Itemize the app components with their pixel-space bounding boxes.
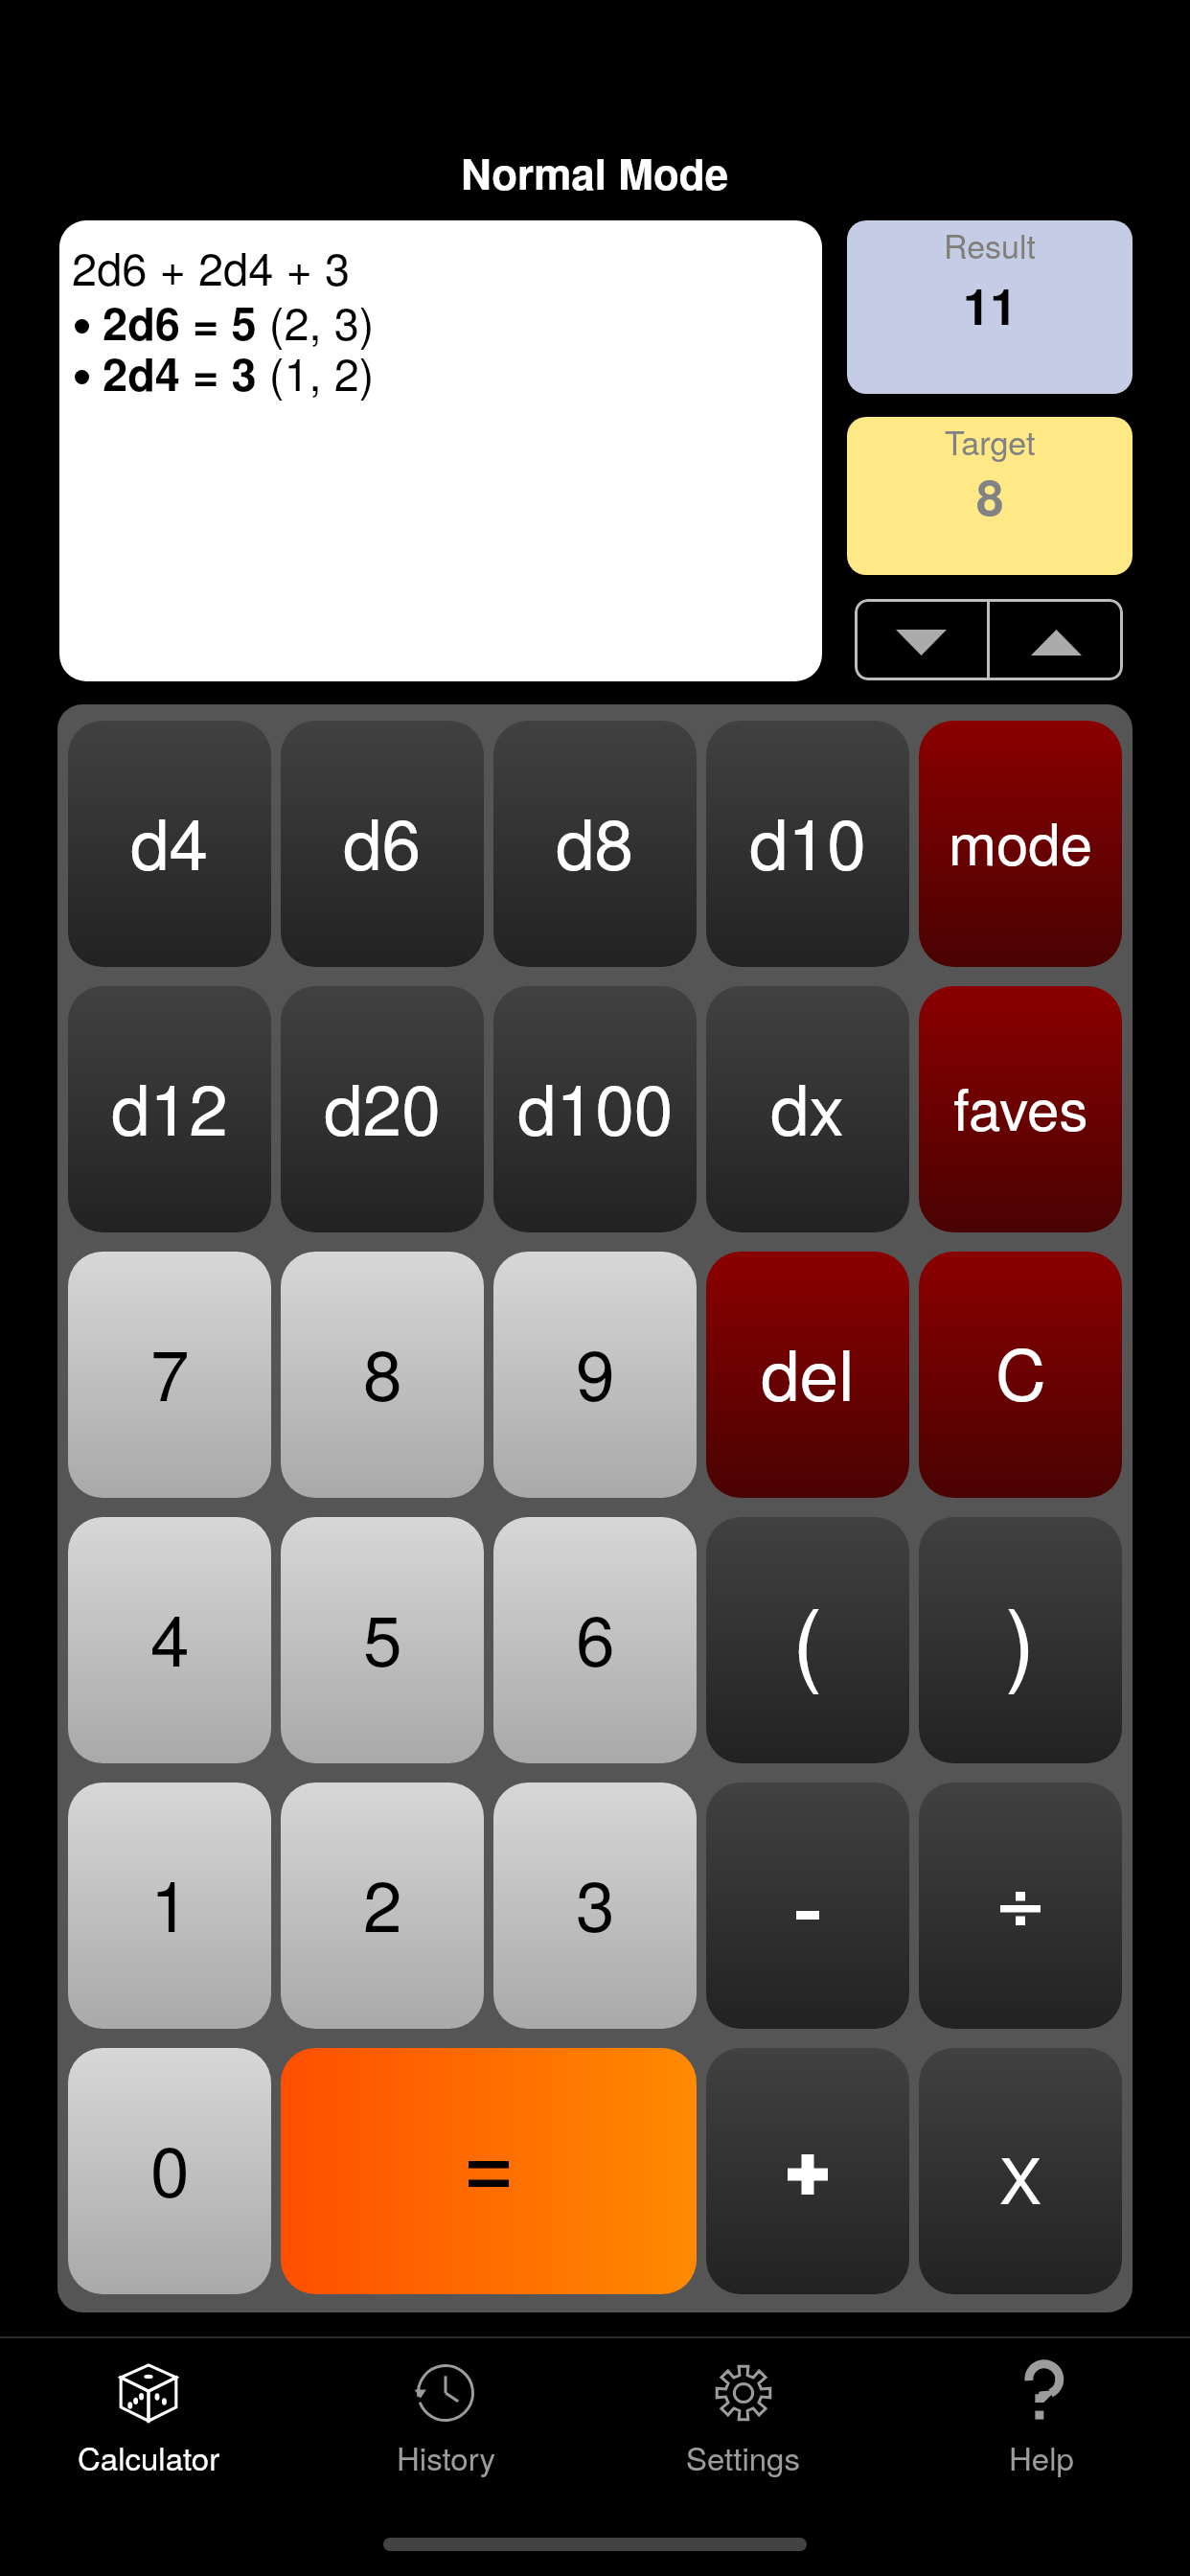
staticText: Result xyxy=(944,221,1037,268)
button[interactable]: History xyxy=(297,2338,594,2492)
staticText: 8 xyxy=(363,1321,402,1421)
button[interactable]: d4 xyxy=(68,721,271,967)
button[interactable]: 9 xyxy=(493,1252,697,1498)
staticText: ( xyxy=(792,1572,823,1701)
button[interactable]: faves xyxy=(919,986,1122,1232)
button[interactable]: d6 xyxy=(281,721,484,967)
button[interactable]: del xyxy=(706,1252,909,1498)
button[interactable] xyxy=(281,2048,697,2294)
staticText: History xyxy=(397,2434,495,2479)
button[interactable]: X xyxy=(919,2048,1122,2294)
staticText: 2d6 = 5 (2, 3) xyxy=(103,288,375,354)
button[interactable]: 1 xyxy=(68,1782,271,2029)
staticText: 6 xyxy=(576,1586,615,1687)
staticText: d20 xyxy=(324,1055,441,1156)
staticText: d10 xyxy=(749,790,866,890)
staticText: d12 xyxy=(111,1055,228,1156)
staticText: Settings xyxy=(686,2434,800,2479)
staticText: d8 xyxy=(556,790,634,890)
staticText: faves xyxy=(953,1065,1088,1147)
button[interactable]: Result xyxy=(847,220,1133,394)
button[interactable]: d12 xyxy=(68,986,271,1232)
button[interactable]: 3 xyxy=(493,1782,697,2029)
staticText: C xyxy=(995,1321,1046,1421)
staticText: Normal Mode xyxy=(461,142,729,202)
staticText: 3 xyxy=(576,1851,615,1952)
staticText: 2d4 = 3 (1, 2) xyxy=(103,339,375,404)
staticText: 9 xyxy=(576,1321,615,1421)
staticText: 7 xyxy=(150,1321,190,1421)
staticText: 4 xyxy=(150,1586,190,1687)
button[interactable]: Calculator xyxy=(0,2338,297,2492)
staticText: Help xyxy=(1009,2434,1074,2479)
button[interactable]: Decrease target xyxy=(855,599,987,680)
staticText: d6 xyxy=(343,790,422,890)
button[interactable]: dx xyxy=(706,986,909,1232)
button[interactable]: 4 xyxy=(68,1517,271,1763)
button[interactable]: 6 xyxy=(493,1517,697,1763)
button[interactable] xyxy=(919,1782,1122,2029)
button[interactable]: d20 xyxy=(281,986,484,1232)
button[interactable]: d8 xyxy=(493,721,697,967)
staticText: X xyxy=(999,2131,1042,2222)
staticText: del xyxy=(761,1321,855,1421)
button[interactable]: 7 xyxy=(68,1252,271,1498)
button[interactable]: 2d6 + 2d4 + 3 xyxy=(59,220,822,681)
staticText: Calculator xyxy=(78,2434,220,2479)
button[interactable]: Help xyxy=(892,2338,1190,2492)
button[interactable]: Settings xyxy=(594,2338,892,2492)
button[interactable]: 0 xyxy=(68,2048,271,2294)
button[interactable]: 5 xyxy=(281,1517,484,1763)
button[interactable]: ) xyxy=(919,1517,1122,1763)
button[interactable]: Increase target xyxy=(990,599,1123,680)
button[interactable]: mode xyxy=(919,721,1122,967)
button[interactable]: ( xyxy=(706,1517,909,1763)
staticText: Target xyxy=(945,418,1036,465)
button[interactable]: Target xyxy=(847,417,1133,575)
staticText: mode xyxy=(949,799,1093,882)
staticText: 0 xyxy=(150,2117,190,2218)
button[interactable]: 2 xyxy=(281,1782,484,2029)
staticText: 8 xyxy=(976,461,1004,531)
staticText: d4 xyxy=(130,790,209,890)
button[interactable] xyxy=(706,1782,909,2029)
button[interactable]: d10 xyxy=(706,721,909,967)
staticText: d100 xyxy=(517,1055,674,1156)
staticText: 2d6 + 2d4 + 3 xyxy=(72,234,351,298)
staticText: 1 xyxy=(150,1851,190,1952)
button[interactable] xyxy=(706,2048,909,2294)
staticText: 2 xyxy=(363,1851,402,1952)
staticText: ) xyxy=(1005,1572,1036,1701)
staticText: 5 xyxy=(363,1586,402,1687)
button[interactable]: C xyxy=(919,1252,1122,1498)
button[interactable]: 8 xyxy=(281,1252,484,1498)
staticText: dx xyxy=(770,1055,845,1156)
staticText: 11 xyxy=(963,270,1018,340)
button[interactable]: d100 xyxy=(493,986,697,1232)
